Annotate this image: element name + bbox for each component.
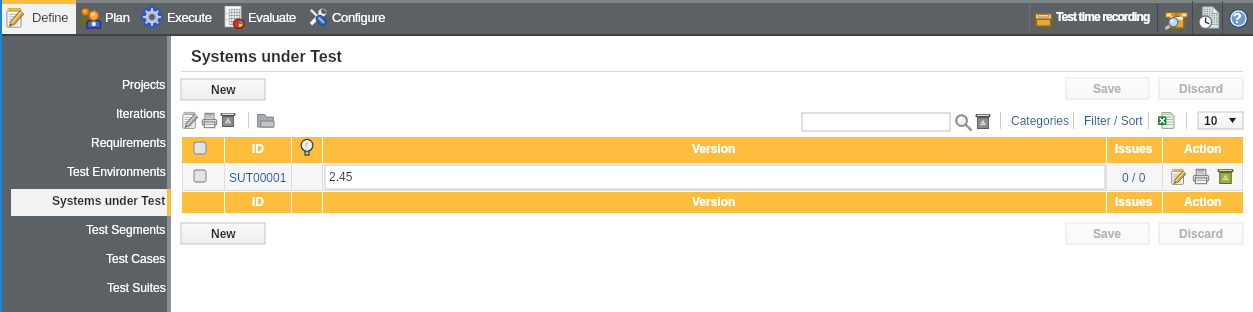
button[interactable]: Clear filter — [975, 113, 991, 130]
button[interactable]: Delete — [220, 112, 236, 128]
button[interactable]: Test time recording — [1033, 5, 1153, 30]
staticText: Execute — [167, 10, 212, 25]
button[interactable]: Export to Excel — [1157, 112, 1175, 129]
staticText: 10 — [1204, 114, 1218, 127]
button[interactable]: 2.45 — [325, 165, 1105, 189]
button[interactable]: 10 — [1198, 112, 1243, 129]
staticText: Test Environments — [67, 165, 166, 178]
staticText: Test Suites — [107, 281, 166, 294]
staticText: Test Segments — [86, 223, 166, 236]
button[interactable]: Test Cases — [11, 245, 167, 274]
button[interactable]: Search test data — [1161, 4, 1191, 32]
button[interactable]: Configure — [306, 2, 408, 33]
button[interactable]: Save — [1066, 223, 1149, 244]
button[interactable]: Test Environments — [11, 158, 167, 187]
staticText: Issues — [1115, 195, 1153, 208]
staticText: Iterations — [116, 107, 166, 120]
button[interactable]: Test Segments — [11, 216, 167, 245]
button[interactable]: Projects — [11, 71, 167, 100]
staticText: Version — [692, 142, 736, 155]
button[interactable]: Iterations — [11, 100, 167, 129]
button[interactable]: Plan — [79, 2, 141, 33]
button[interactable]: Test Suites — [11, 274, 167, 303]
button[interactable]: Delete row — [1217, 168, 1234, 185]
staticText: Save — [1093, 82, 1122, 95]
button[interactable]: Select row — [194, 142, 206, 154]
button[interactable]: Search — [954, 113, 972, 131]
staticText: Discard — [1179, 82, 1224, 95]
staticText: Test time recording — [1056, 10, 1150, 23]
button[interactable]: Edit — [182, 112, 198, 129]
button[interactable]: Print — [202, 113, 217, 128]
staticText: Systems under Test — [191, 48, 342, 66]
button[interactable]: Evaluate — [224, 2, 316, 33]
staticText: 0 / 0 — [1122, 171, 1146, 184]
staticText: 2.45 — [329, 170, 353, 183]
button[interactable]: Save — [1066, 78, 1149, 99]
button[interactable]: Reports — [1196, 3, 1222, 32]
staticText: Evaluate — [248, 10, 296, 25]
staticText: Projects — [122, 78, 166, 91]
staticText: Plan — [105, 10, 130, 25]
button[interactable]: Select row — [194, 170, 206, 182]
button[interactable] — [802, 113, 950, 131]
staticText: Configure — [332, 10, 386, 25]
button[interactable]: New — [181, 223, 265, 244]
button[interactable]: Discard — [1159, 223, 1243, 244]
staticText: New — [211, 83, 236, 96]
staticText: ? — [1233, 10, 1242, 26]
button[interactable]: Systems under Test — [11, 187, 167, 216]
button[interactable]: Define — [2, 0, 76, 34]
staticText: SUT00001 — [229, 171, 287, 184]
staticText: Define — [32, 10, 69, 25]
staticText: New — [211, 227, 236, 240]
staticText: Version — [692, 195, 736, 208]
button[interactable]: New — [181, 79, 265, 100]
staticText: Filter / Sort — [1084, 114, 1143, 127]
staticText: Action — [1184, 195, 1222, 208]
staticText: Action — [1184, 142, 1222, 155]
button[interactable]: Edit row — [1171, 169, 1186, 185]
staticText: Issues — [1115, 142, 1153, 155]
button[interactable]: Requirements — [11, 129, 167, 158]
button[interactable]: Open folder — [257, 112, 274, 128]
staticText: Discard — [1179, 227, 1224, 240]
button[interactable]: Print row — [1193, 169, 1209, 184]
staticText: ID — [252, 142, 264, 155]
button[interactable]: Execute — [141, 2, 227, 33]
button[interactable]: Help — [1226, 4, 1253, 32]
staticText: Systems under Test — [52, 194, 166, 207]
staticText: Requirements — [91, 136, 166, 149]
button[interactable]: Filter / Sort — [1084, 114, 1143, 127]
staticText: Save — [1093, 227, 1122, 240]
staticText: Test Cases — [106, 252, 166, 265]
staticText: Categories — [1011, 114, 1070, 127]
button[interactable]: SUT00001 — [224, 163, 291, 191]
button[interactable]: Categories — [1011, 114, 1070, 127]
staticText: ID — [252, 195, 264, 208]
button[interactable]: Discard — [1159, 78, 1243, 99]
